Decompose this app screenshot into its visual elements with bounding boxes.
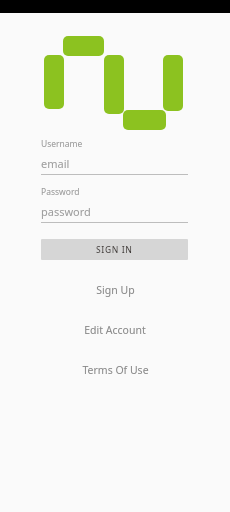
button[interactable]: SIGN IN <box>41 239 188 260</box>
staticText: Password <box>41 186 80 198</box>
staticText: Username <box>41 138 83 150</box>
button[interactable]: password <box>41 204 188 223</box>
staticText: email <box>41 156 70 171</box>
button[interactable]: Edit Account <box>0 322 230 338</box>
button[interactable]: Terms Of Use <box>0 362 230 378</box>
button[interactable]: Sign Up <box>0 282 230 298</box>
button[interactable]: email <box>41 156 188 175</box>
staticText: Edit Account <box>84 323 146 337</box>
staticText: SIGN IN <box>96 244 133 256</box>
staticText: Terms Of Use <box>82 363 149 377</box>
staticText: password <box>41 204 91 219</box>
staticText: Sign Up <box>96 283 135 297</box>
